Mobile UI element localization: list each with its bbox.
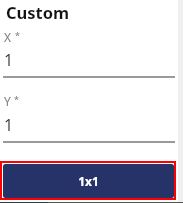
button[interactable]: 1x1 — [3, 164, 174, 198]
button[interactable]: X value — [3, 49, 175, 71]
staticText: 1 — [4, 114, 14, 136]
staticText: * — [14, 93, 19, 105]
staticText: X — [4, 29, 12, 45]
staticText: Custom — [6, 1, 70, 23]
staticText: 1x1 — [78, 173, 99, 189]
staticText: 1 — [4, 49, 14, 71]
staticText: * — [15, 29, 20, 41]
staticText: Y — [4, 93, 11, 109]
button[interactable]: Y value — [3, 114, 175, 136]
